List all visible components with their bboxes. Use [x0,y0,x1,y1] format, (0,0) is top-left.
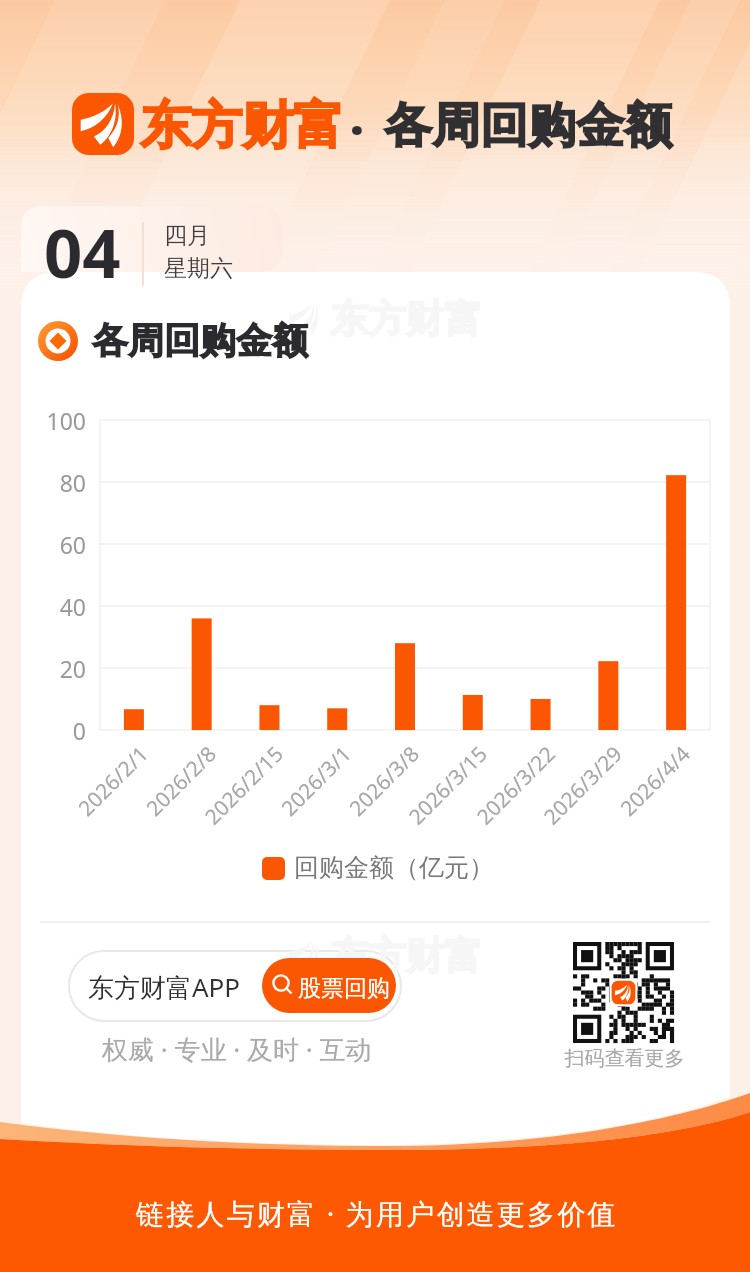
staticText: 20 [20,653,86,1272]
button[interactable]: 东方财富APP [69,951,401,1021]
staticText: 2026/2/8 [103,740,223,860]
staticText: 权威 · 专业 · 及时 · 互动 [102,1031,372,1067]
staticText: 各周回购金额 [384,96,672,156]
staticText: 60 [20,529,86,1272]
staticText: · [350,96,364,161]
staticText: 2026/2/1 [35,740,155,860]
staticText: 股票回购 [298,974,390,1003]
staticText: 东方财富 [330,295,482,343]
staticText: 40 [20,591,86,1272]
staticText: 2026/3/22 [442,740,562,860]
button[interactable]: 扫码查看更多 [541,1046,708,1272]
staticText: 四月 [164,221,210,250]
staticText: 04 [44,206,121,297]
staticText: 星期六 [164,254,233,283]
staticText: 东方财富APP [88,969,241,1005]
staticText: 80 [20,467,86,1272]
staticText: 0 [20,715,86,1272]
button[interactable]: 股票回购 [262,958,396,1013]
staticText: 东方财富 [330,932,482,980]
staticText: 2026/4/4 [577,740,697,860]
staticText: 2026/3/15 [374,740,494,860]
staticText: 2026/3/1 [238,740,358,860]
staticText: 回购金额（亿元） [294,852,494,883]
staticText: 100 [20,405,86,1272]
staticText: 扫码查看更多 [541,1046,708,1272]
staticText: 各周回购金额 [92,318,308,363]
staticText: 2026/2/15 [170,740,290,860]
staticText: 2026/3/29 [509,740,629,860]
staticText: 链接人与财富 · 为用户创造更多价值 [136,1194,618,1232]
staticText: 2026/3/8 [306,740,426,860]
staticText: 东方财富 [140,94,344,158]
